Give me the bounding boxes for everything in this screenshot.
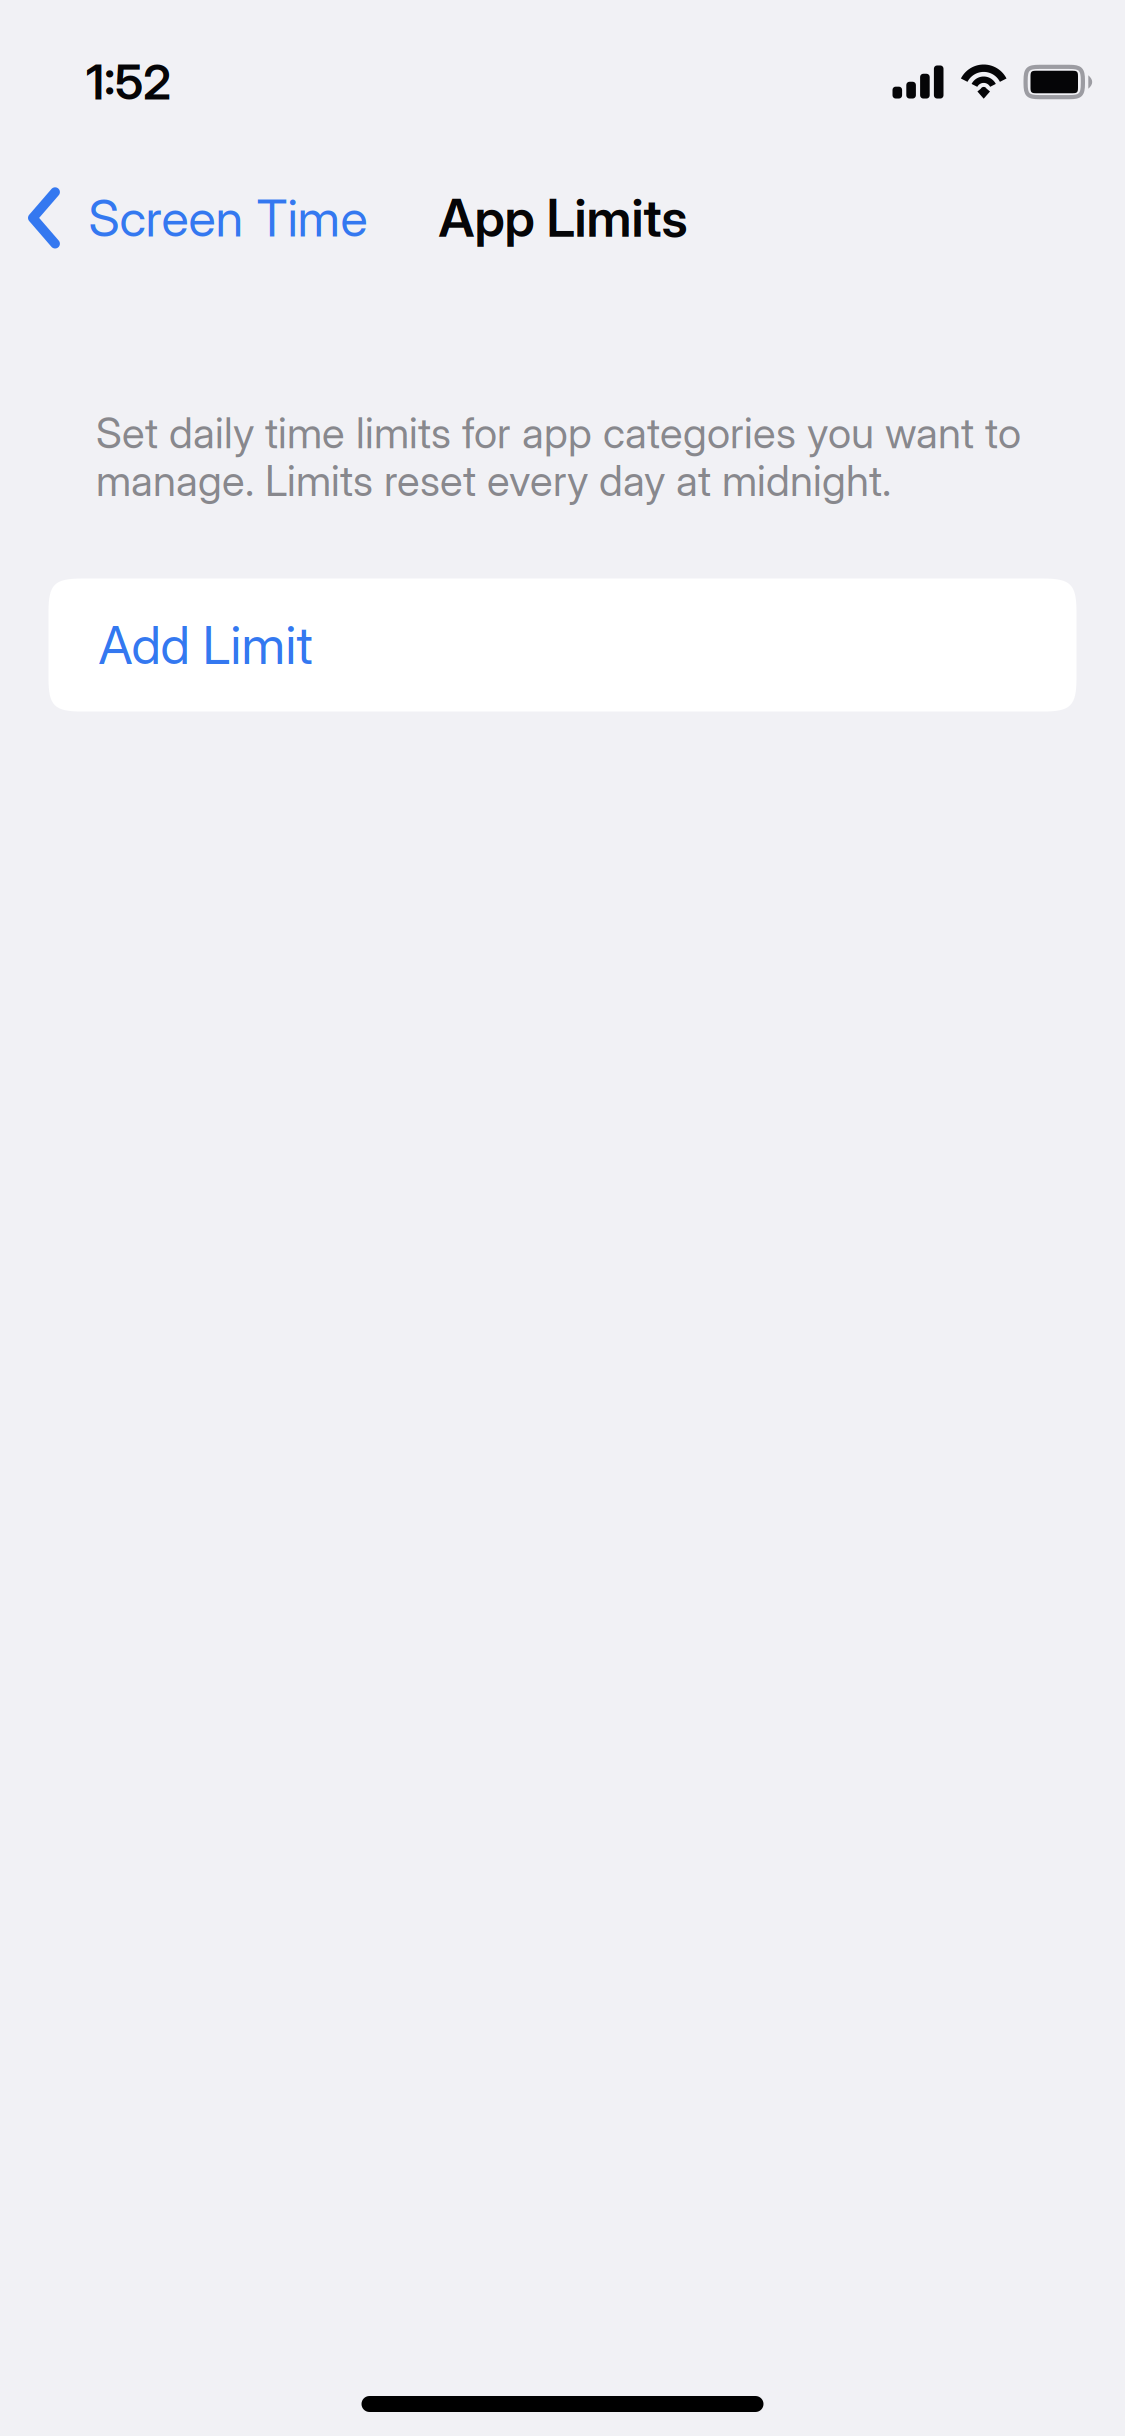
button[interactable]: Add Limit [48, 578, 1076, 711]
staticText: App Limits [439, 187, 688, 249]
button[interactable]: Back to Screen Time [0, 170, 388, 266]
staticText: Screen Time [89, 187, 368, 249]
staticText: Add Limit [98, 614, 312, 676]
staticText: 1:52 [86, 53, 171, 111]
staticText: Set daily time limits for app categories… [96, 409, 1021, 504]
